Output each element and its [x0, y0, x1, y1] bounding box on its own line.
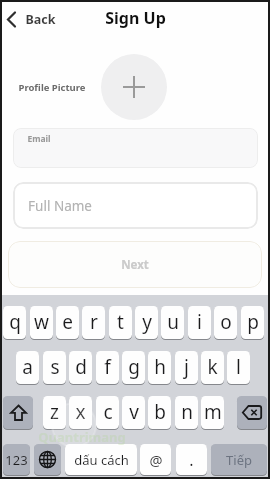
- button[interactable]: u: [161, 306, 184, 339]
- staticText: u: [167, 309, 179, 335]
- button[interactable]: k: [201, 351, 224, 384]
- staticText: .: [189, 449, 194, 471]
- button[interactable]: [237, 396, 267, 429]
- button[interactable]: q: [3, 306, 26, 339]
- staticText: x: [75, 399, 86, 425]
- button[interactable]: h: [148, 351, 171, 384]
- button[interactable]: n: [175, 396, 198, 429]
- button[interactable]: dấu cách: [65, 444, 137, 475]
- staticText: Back: [25, 11, 56, 28]
- staticText: Quantrimang: [38, 428, 126, 446]
- staticText: q: [9, 309, 21, 335]
- staticText: Profile Picture: [18, 81, 86, 94]
- staticText: o: [220, 309, 232, 335]
- button[interactable]: [101, 54, 167, 120]
- staticText: t: [117, 309, 124, 335]
- staticText: dấu cách: [74, 451, 129, 469]
- button[interactable]: g: [122, 351, 145, 384]
- staticText: Sign Up: [105, 7, 166, 29]
- staticText: k: [207, 354, 218, 380]
- staticText: f: [104, 354, 111, 380]
- button[interactable]: [3, 396, 33, 429]
- button[interactable]: y: [135, 306, 158, 339]
- button[interactable]: @: [140, 444, 171, 475]
- staticText: z: [50, 399, 59, 425]
- button[interactable]: j: [175, 351, 198, 384]
- button[interactable]: [34, 444, 61, 475]
- staticText: v: [129, 399, 139, 425]
- staticText: g: [128, 354, 140, 380]
- staticText: n: [181, 399, 193, 425]
- button[interactable]: l: [227, 351, 250, 384]
- staticText: l: [236, 354, 241, 380]
- button[interactable]: o: [214, 306, 237, 339]
- button[interactable]: w: [30, 306, 53, 339]
- staticText: i: [197, 309, 202, 335]
- staticText: d: [75, 354, 87, 380]
- button[interactable]: b: [148, 396, 171, 429]
- staticText: Tiếp: [226, 451, 252, 469]
- button[interactable]: e: [56, 306, 79, 339]
- button[interactable]: r: [82, 306, 105, 339]
- staticText: j: [184, 354, 189, 380]
- button[interactable]: d: [69, 351, 92, 384]
- button[interactable]: Full Name: [13, 182, 258, 229]
- button[interactable]: x: [69, 396, 92, 429]
- staticText: @: [149, 450, 163, 470]
- staticText: w: [34, 309, 49, 335]
- staticText: Full Name: [28, 197, 92, 215]
- staticText: h: [154, 354, 166, 380]
- staticText: b: [154, 399, 166, 425]
- button[interactable]: Email: [13, 128, 258, 168]
- button[interactable]: p: [241, 306, 264, 339]
- button[interactable]: .: [176, 444, 207, 475]
- staticText: Email: [27, 133, 51, 145]
- staticText: e: [62, 309, 73, 335]
- button[interactable]: Next: [8, 241, 262, 288]
- staticText: 123: [5, 451, 28, 469]
- staticText: y: [142, 309, 152, 335]
- button[interactable]: Back: [6, 7, 56, 31]
- staticText: a: [22, 354, 33, 380]
- button[interactable]: v: [122, 396, 145, 429]
- button[interactable]: a: [16, 351, 39, 384]
- staticText: m: [204, 399, 222, 425]
- staticText: c: [103, 399, 113, 425]
- button[interactable]: 123: [3, 444, 30, 475]
- button[interactable]: t: [109, 306, 132, 339]
- button[interactable]: c: [96, 396, 119, 429]
- staticText: p: [247, 309, 259, 335]
- button[interactable]: i: [188, 306, 211, 339]
- button[interactable]: z: [43, 396, 66, 429]
- button[interactable]: Tiếp: [211, 444, 267, 475]
- button[interactable]: m: [201, 396, 224, 429]
- staticText: r: [90, 309, 98, 335]
- staticText: Next: [121, 257, 149, 273]
- staticText: s: [50, 354, 60, 380]
- button[interactable]: f: [96, 351, 119, 384]
- button[interactable]: s: [43, 351, 66, 384]
